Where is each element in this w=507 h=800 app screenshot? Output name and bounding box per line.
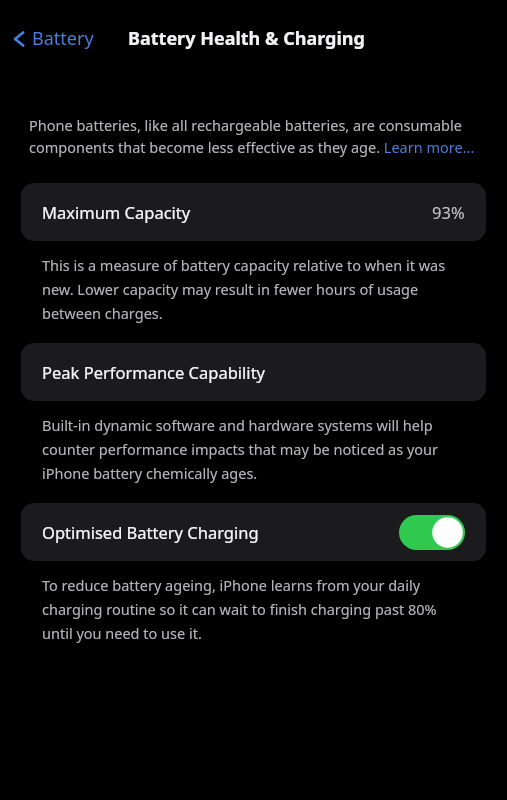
button[interactable]: Maximum Capacity xyxy=(21,183,486,241)
staticText: 93% xyxy=(432,201,465,223)
staticText: Built-in dynamic software and hardware s… xyxy=(42,415,467,483)
staticText: Maximum Capacity xyxy=(42,201,432,223)
button[interactable]: Optimised Battery Charging xyxy=(21,503,486,561)
button[interactable]: Optimised Battery Charging toggle xyxy=(399,515,465,550)
button[interactable]: Back to Battery xyxy=(8,22,100,55)
staticText: Battery Health & Charging xyxy=(128,26,365,51)
staticText: Battery xyxy=(32,26,94,51)
staticText: This is a measure of battery capacity re… xyxy=(42,255,467,323)
staticText: Optimised Battery Charging xyxy=(42,521,399,543)
staticText: To reduce battery ageing, iPhone learns … xyxy=(42,575,467,643)
staticText: Peak Performance Capability xyxy=(42,361,265,383)
button[interactable]: Peak Performance Capability xyxy=(21,343,486,401)
staticText: Phone batteries, like all rechargeable b… xyxy=(29,115,478,157)
